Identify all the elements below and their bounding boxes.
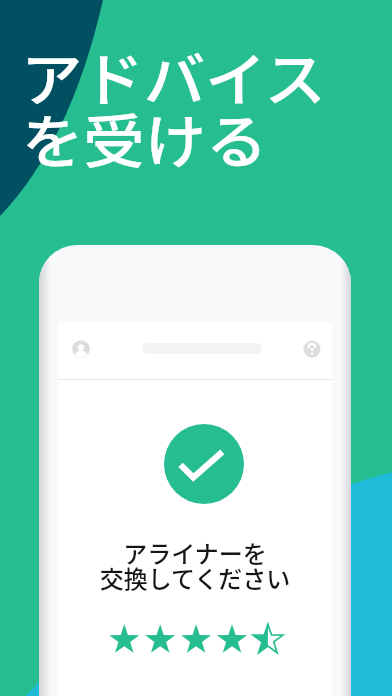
button[interactable]: Success xyxy=(164,424,244,504)
staticText: アドバイス xyxy=(21,34,327,118)
button[interactable]: Account xyxy=(72,340,90,358)
staticText: アライナーを 交換してください xyxy=(58,535,332,595)
button[interactable]: Help xyxy=(303,340,321,358)
staticText: を受ける xyxy=(22,96,268,180)
